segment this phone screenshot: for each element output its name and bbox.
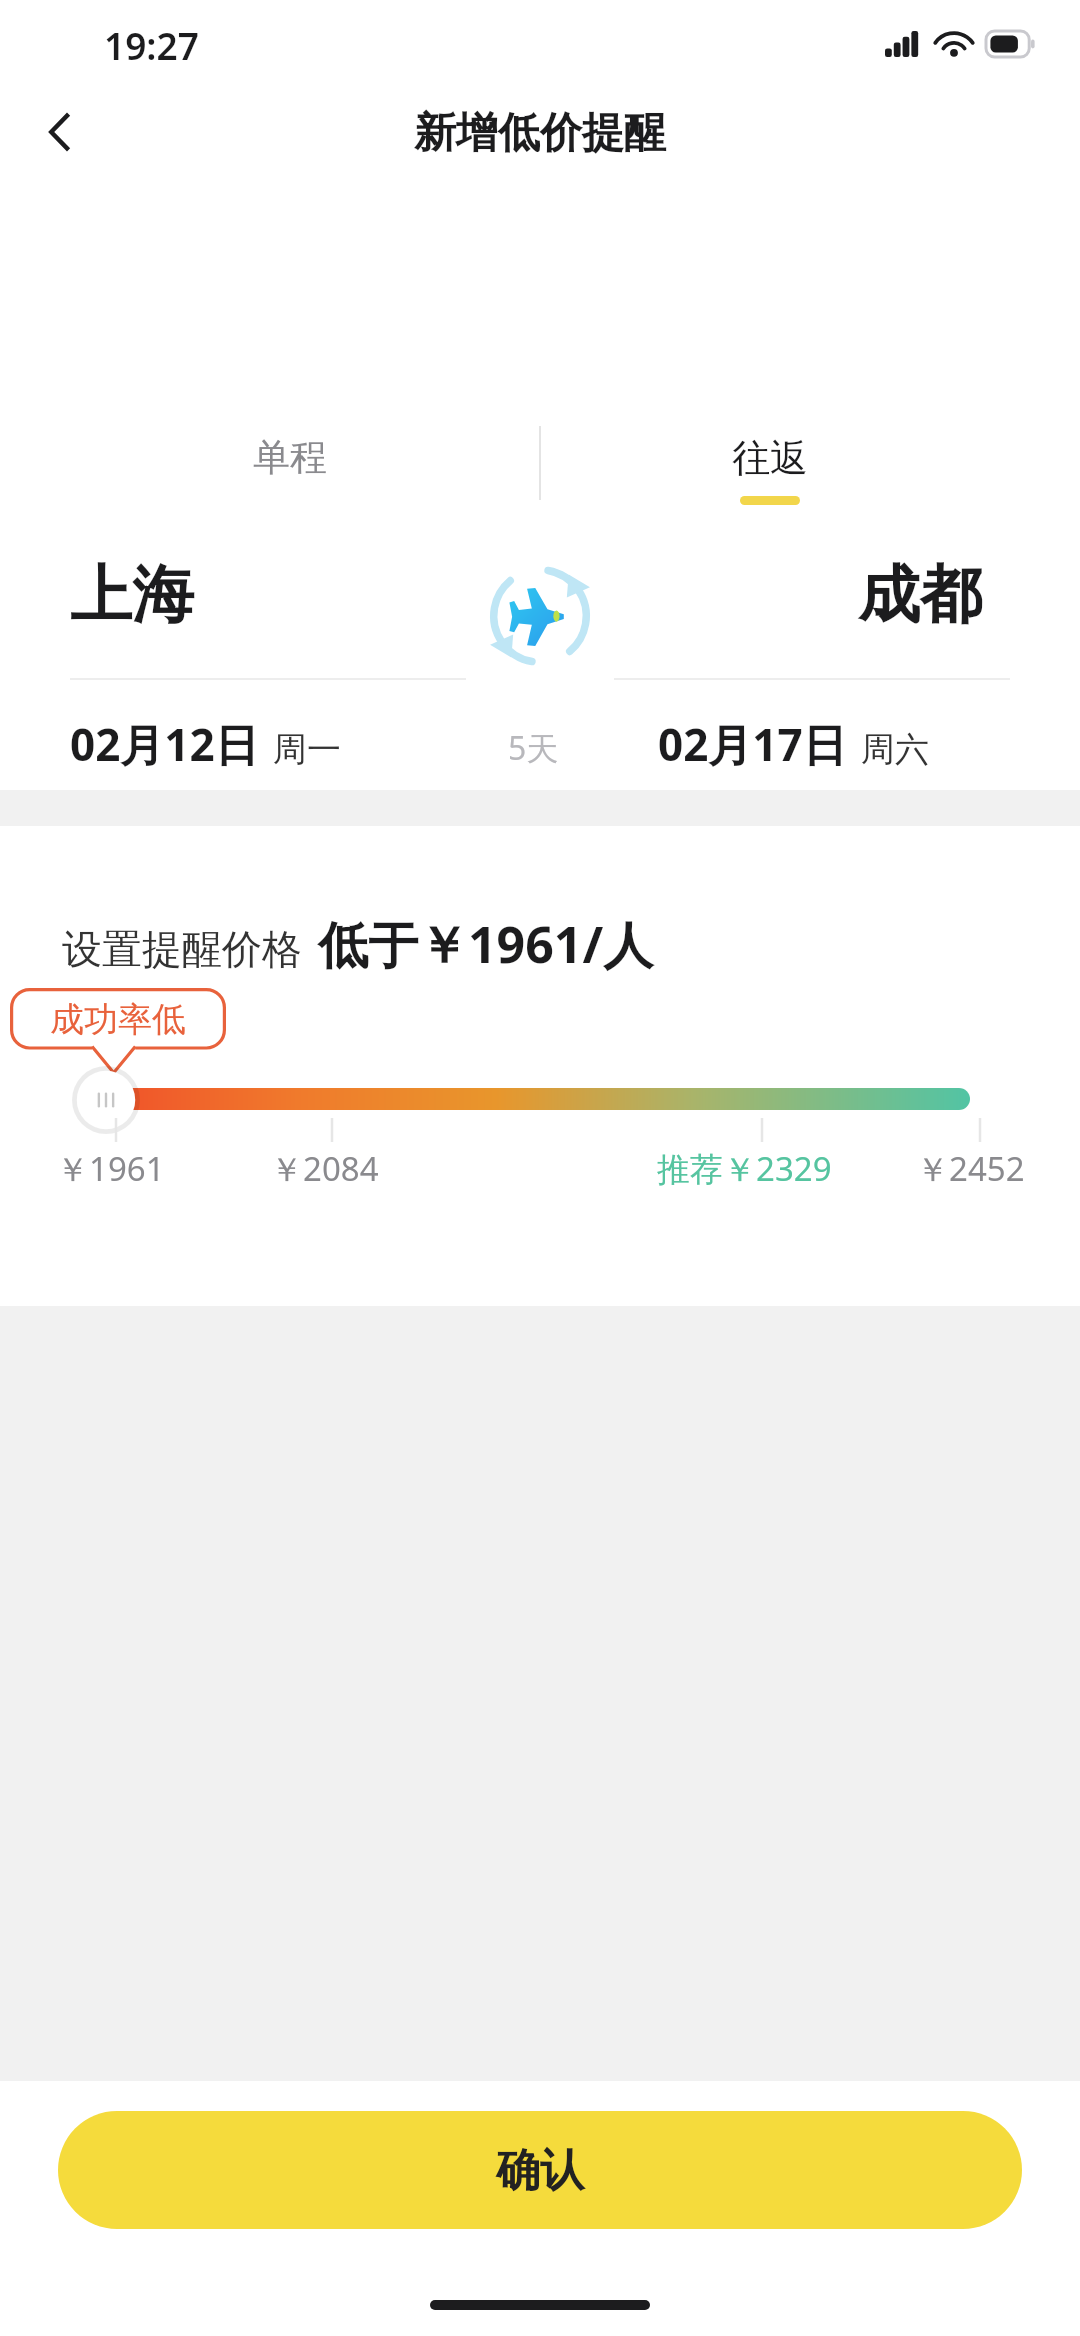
staticText: 02月17日 [658,714,847,774]
staticText: 设置提醒价格 [62,924,302,974]
staticText: 推荐￥2329 [657,1146,832,1191]
staticText: 单程 [253,434,327,481]
staticText: 新增低价提醒 [414,107,666,160]
button[interactable]: 02月12日 [70,714,341,774]
staticText: 低于￥1961/人 [318,910,654,978]
button[interactable]: Back [12,86,108,178]
staticText: 确认 [496,2143,584,2198]
staticText: ￥2452 [916,1146,1025,1191]
button[interactable]: 成都 [858,556,982,634]
button[interactable]: 往返 [680,434,860,518]
staticText: 19:27 [104,20,199,70]
button[interactable]: 上海 [70,556,194,634]
staticText: 周一 [273,728,341,771]
staticText: 5天 [508,726,559,770]
staticText: ￥2084 [270,1146,379,1191]
button[interactable]: Price slider handle [72,1066,140,1134]
staticText: ￥1961 [56,1146,165,1191]
button[interactable]: Swap cities [472,548,608,684]
staticText: 02月12日 [70,714,259,774]
button[interactable]: 确认 [58,2111,1022,2229]
button[interactable]: 02月17日 [658,714,929,774]
staticText: 周六 [861,728,929,771]
staticText: 成功率低 [10,998,226,1041]
button[interactable]: 单程 [200,434,380,518]
button[interactable] [108,1088,970,1110]
staticText: 往返 [732,434,808,482]
